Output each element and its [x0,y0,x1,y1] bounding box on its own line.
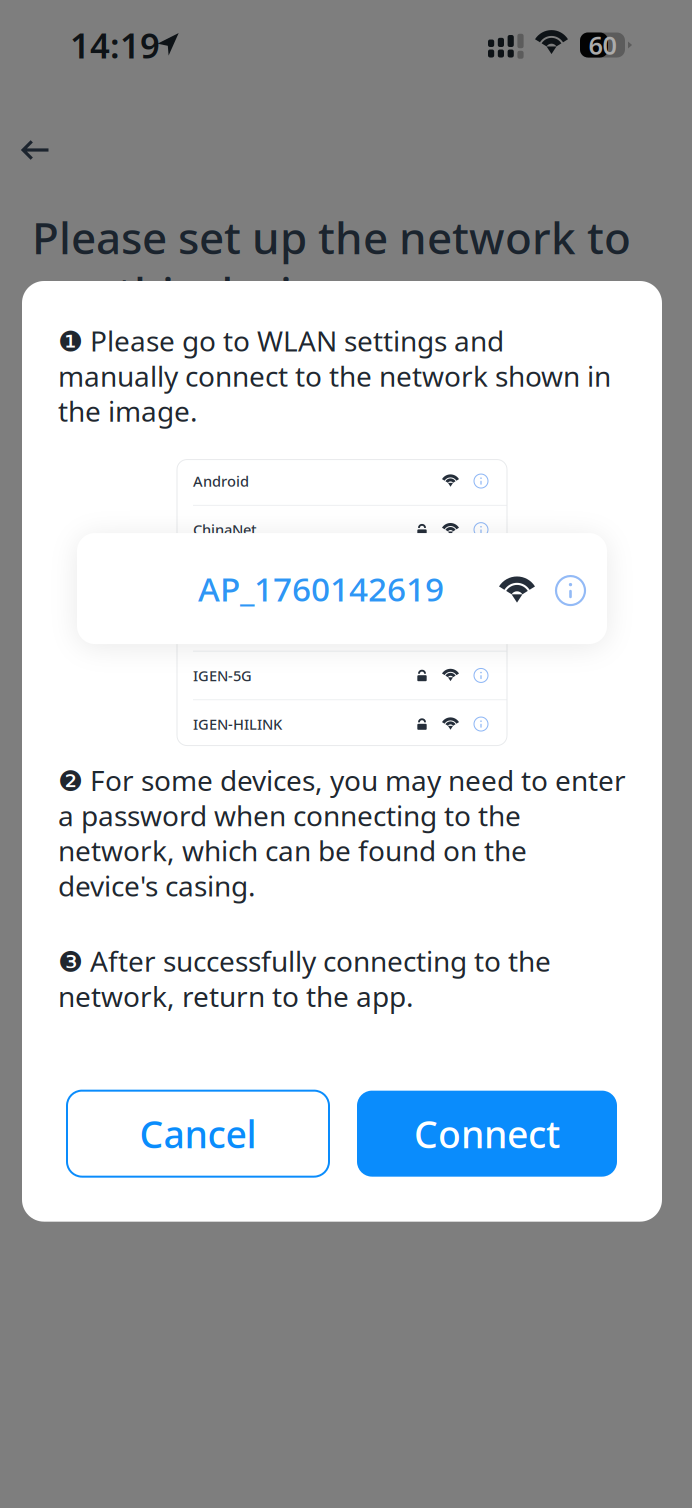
staticText: IGEN-HILINK [193,714,282,734]
staticText: Android [193,471,249,491]
staticText: Connect [414,1109,560,1158]
staticText: IGEN-5G [193,666,252,685]
staticText: ChinaNet [193,520,257,539]
button[interactable]: Back [2,120,68,180]
staticText: Cancel [139,1109,256,1158]
staticText: ❶ Please go to WLAN settings and manuall… [58,322,611,429]
button[interactable]: Cancel [67,1091,329,1177]
staticText: 14:19 [70,22,160,68]
staticText: AP_1760142619 [198,566,444,611]
staticText: 60 [588,28,616,62]
staticText: Please set up the network to use this de… [32,208,631,322]
button[interactable]: Connect [357,1091,617,1177]
staticText: ❷ For some devices, you may need to ente… [58,761,626,904]
staticText: ❸ After successfully connecting to the n… [58,942,551,1015]
staticText: ChinaNet-5G [193,568,281,588]
